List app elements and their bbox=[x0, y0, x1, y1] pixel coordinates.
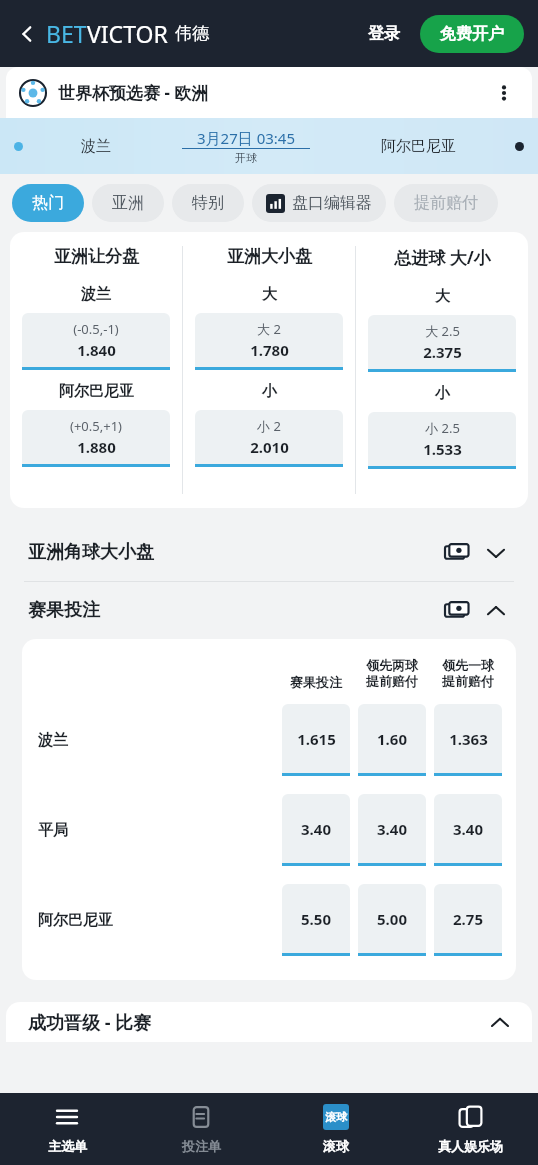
button[interactable]: 波兰 bbox=[0, 118, 538, 174]
button[interactable]: 主选单 bbox=[0, 1093, 134, 1165]
staticText: VICTOR bbox=[87, 18, 168, 49]
staticText: 总进球 大/小 bbox=[394, 246, 491, 269]
button[interactable]: 3.40 bbox=[282, 794, 350, 866]
staticText: 特别 bbox=[192, 193, 224, 213]
staticText: 成功晋级 - 比赛 bbox=[28, 1010, 152, 1035]
staticText: 阿尔巴尼亚 bbox=[38, 911, 113, 930]
button[interactable]: (-0.5,-1) bbox=[22, 313, 170, 370]
staticText: 波兰 bbox=[81, 285, 111, 304]
staticText: 3.40 bbox=[301, 819, 331, 839]
staticText: 大 2.5 bbox=[425, 322, 460, 340]
button[interactable]: 真人娱乐场 bbox=[403, 1093, 538, 1165]
staticText: 登录 bbox=[368, 24, 400, 44]
staticText: 1.840 bbox=[77, 340, 116, 360]
staticText: 热门 bbox=[32, 193, 64, 213]
staticText: 5.50 bbox=[301, 909, 331, 929]
staticText: 1.615 bbox=[297, 729, 336, 749]
staticText: 1.60 bbox=[377, 729, 407, 749]
button[interactable]: 大 2 bbox=[195, 313, 343, 370]
other: Expand bbox=[482, 539, 510, 567]
staticText: 亚洲角球大小盘 bbox=[28, 541, 154, 564]
staticText: 开球 bbox=[235, 151, 257, 165]
staticText: 主选单 bbox=[48, 1138, 87, 1154]
button[interactable]: 2.75 bbox=[434, 884, 502, 956]
staticText: 5.00 bbox=[377, 909, 407, 929]
staticText: 世界杯预选赛 - 欧洲 bbox=[58, 81, 209, 104]
staticText: (+0.5,+1) bbox=[70, 417, 122, 435]
staticText: 阿尔巴尼亚 bbox=[381, 137, 456, 156]
staticText: 亚洲 bbox=[112, 193, 144, 213]
staticText: 2.75 bbox=[453, 909, 483, 929]
button[interactable]: Cash out bbox=[442, 596, 472, 626]
button[interactable]: (+0.5,+1) bbox=[22, 410, 170, 467]
button[interactable]: Back bbox=[14, 21, 40, 47]
button[interactable]: 世界杯预选赛 - 欧洲 bbox=[6, 67, 532, 118]
button[interactable]: 成功晋级 - 比赛 bbox=[6, 1002, 532, 1042]
staticText: 2.010 bbox=[250, 437, 289, 457]
staticText: 伟德 bbox=[175, 23, 209, 44]
button[interactable]: 小 2.5 bbox=[368, 412, 516, 469]
staticText: 阿尔巴尼亚 bbox=[59, 382, 134, 401]
button[interactable]: 小 2 bbox=[195, 410, 343, 467]
staticText: 滚球 bbox=[325, 1110, 347, 1124]
staticText: 2.375 bbox=[423, 342, 462, 362]
staticText: 1.533 bbox=[423, 439, 462, 459]
button[interactable]: 投注单 bbox=[134, 1093, 268, 1165]
staticText: 波兰 bbox=[38, 731, 68, 750]
staticText: 1.780 bbox=[250, 340, 289, 360]
staticText: 小 2 bbox=[257, 417, 281, 435]
staticText: 1.363 bbox=[449, 729, 488, 749]
staticText: 真人娱乐场 bbox=[438, 1138, 503, 1154]
staticText: 投注单 bbox=[182, 1138, 221, 1154]
staticText: 大 2 bbox=[257, 320, 281, 338]
staticText: 亚洲大小盘 bbox=[227, 246, 312, 267]
button[interactable]: More options bbox=[490, 79, 518, 107]
staticText: BET bbox=[46, 18, 87, 49]
staticText: 3月27日 03:45 bbox=[197, 128, 295, 148]
staticText: 大 bbox=[435, 287, 450, 306]
staticText: 平局 bbox=[38, 821, 68, 840]
button[interactable]: 提前赔付 bbox=[394, 184, 498, 222]
button[interactable]: 亚洲角球大小盘 bbox=[0, 524, 538, 581]
button[interactable]: 登录 bbox=[360, 18, 408, 50]
button[interactable]: 大 2.5 bbox=[368, 315, 516, 372]
button[interactable]: 热门 bbox=[12, 184, 84, 222]
staticText: 亚洲让分盘 bbox=[54, 246, 139, 267]
button[interactable]: 盘口编辑器 bbox=[252, 184, 386, 222]
button[interactable]: 特别 bbox=[172, 184, 244, 222]
staticText: (-0.5,-1) bbox=[73, 320, 119, 338]
staticText: 提前赔付 bbox=[414, 193, 478, 213]
button[interactable]: 亚洲 bbox=[92, 184, 164, 222]
staticText: 盘口编辑器 bbox=[292, 193, 372, 213]
staticText: 波兰 bbox=[81, 137, 111, 156]
staticText: 领先两球 提前赔付 bbox=[366, 657, 418, 690]
button[interactable]: 1.60 bbox=[358, 704, 426, 776]
other: Collapse bbox=[482, 597, 510, 625]
button[interactable]: 5.00 bbox=[358, 884, 426, 956]
staticText: 领先一球 提前赔付 bbox=[442, 657, 494, 690]
button[interactable]: 赛果投注 bbox=[0, 582, 538, 639]
staticText: 1.880 bbox=[77, 437, 116, 457]
staticText: 小 2.5 bbox=[425, 419, 460, 437]
button[interactable]: 1.615 bbox=[282, 704, 350, 776]
button[interactable]: Cash out bbox=[442, 538, 472, 568]
staticText: 赛果投注 bbox=[290, 674, 342, 690]
staticText: 3.40 bbox=[453, 819, 483, 839]
button[interactable]: 免费开户 bbox=[420, 15, 524, 53]
staticText: 小 bbox=[262, 382, 277, 401]
button[interactable]: 滚球 bbox=[268, 1093, 403, 1165]
button[interactable]: 3.40 bbox=[434, 794, 502, 866]
staticText: 大 bbox=[262, 285, 277, 304]
staticText: 滚球 bbox=[323, 1138, 349, 1154]
staticText: 小 bbox=[435, 384, 450, 403]
staticText: 赛果投注 bbox=[28, 599, 100, 622]
staticText: 免费开户 bbox=[440, 24, 504, 44]
button[interactable]: 1.363 bbox=[434, 704, 502, 776]
staticText: 3.40 bbox=[377, 819, 407, 839]
button[interactable]: 3.40 bbox=[358, 794, 426, 866]
button[interactable]: 5.50 bbox=[282, 884, 350, 956]
